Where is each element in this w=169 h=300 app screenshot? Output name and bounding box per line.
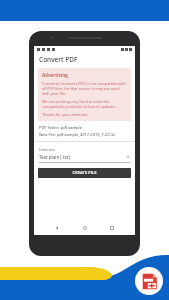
button[interactable]: Home [80, 223, 90, 233]
staticText: Convert PDF [39, 55, 78, 64]
staticText: Advertising [42, 72, 68, 78]
staticText: New File: pdf-sample_2017-2019_7-20-3x [39, 132, 116, 137]
button[interactable]: Extension [39, 147, 130, 163]
button[interactable]: Back [52, 223, 62, 233]
button[interactable]: PDF app icon [135, 267, 163, 295]
button[interactable]: Recent apps [107, 223, 117, 233]
staticText: Thanks for your attention. [42, 112, 89, 117]
staticText: PDF Select: pdf-sample [39, 125, 82, 130]
staticText: Text plain (.txt) [39, 154, 70, 160]
staticText: Extension [39, 147, 56, 152]
staticText: Currently Converter PDF is not compatibl… [42, 81, 127, 96]
staticText: We are working very hard to solve the co… [42, 99, 127, 109]
staticText: CREATE FILE [72, 170, 97, 176]
button[interactable]: CREATE FILE [38, 168, 131, 178]
